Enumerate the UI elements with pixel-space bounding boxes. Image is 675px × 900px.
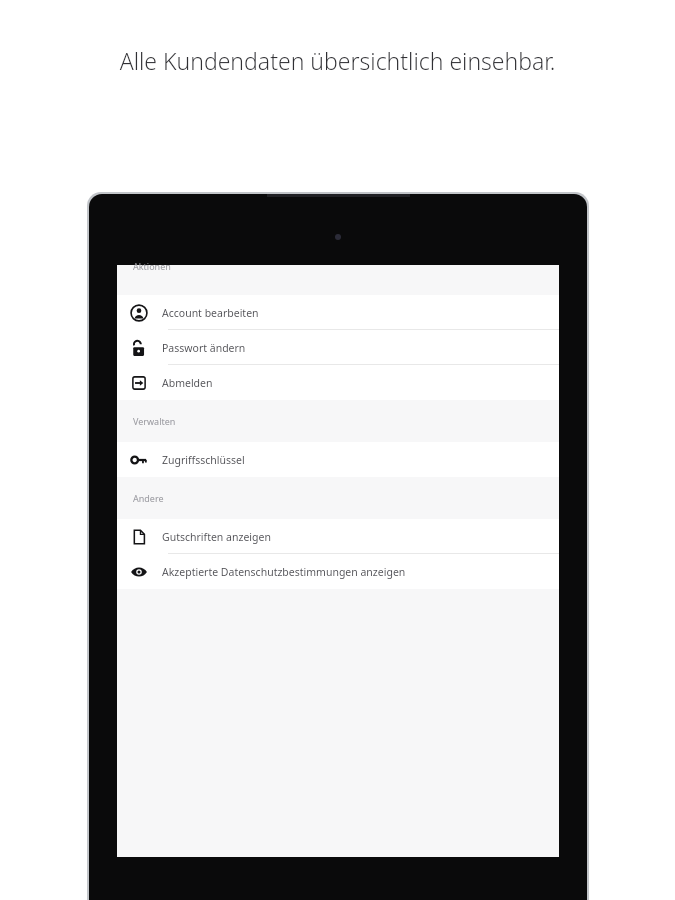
staticText: Alle Kundendaten übersichtlich einsehbar… (12, 45, 663, 76)
button[interactable]: Account bearbeiten (117, 295, 559, 330)
button[interactable]: Abmelden (117, 365, 559, 400)
staticText: Passwort ändern (162, 341, 246, 355)
staticText: Andere (133, 492, 164, 504)
button[interactable]: Passwort ändern (117, 330, 559, 365)
staticText: Account bearbeiten (162, 306, 259, 320)
button[interactable]: Akzeptierte Datenschutzbestimmungen anze… (117, 554, 559, 589)
staticText: Zugriffsschlüssel (162, 453, 245, 467)
button[interactable]: Zugriffsschlüssel (117, 442, 559, 477)
staticText: Abmelden (162, 376, 213, 390)
button[interactable]: Gutschriften anzeigen (117, 519, 559, 554)
staticText: Aktionen (133, 260, 171, 272)
staticText: Akzeptierte Datenschutzbestimmungen anze… (162, 565, 406, 579)
staticText: Verwalten (133, 415, 176, 427)
staticText: Gutschriften anzeigen (162, 530, 271, 544)
